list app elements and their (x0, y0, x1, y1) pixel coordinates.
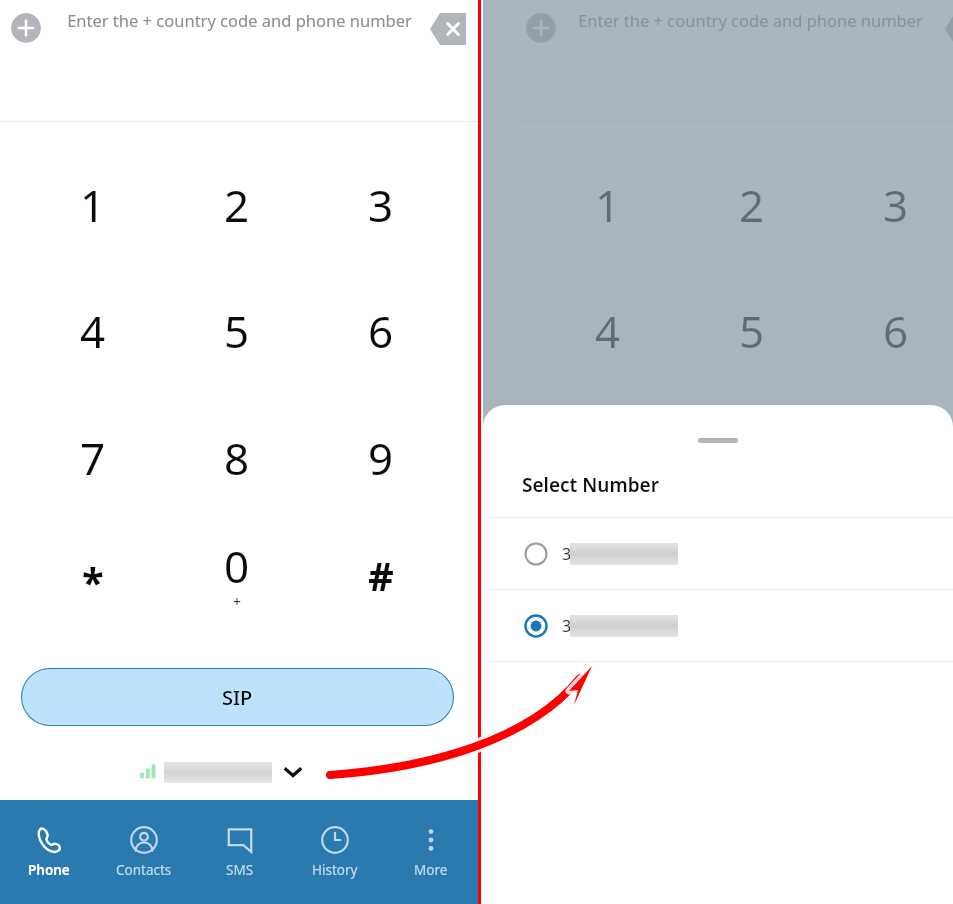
button[interactable]: 1 (35, 161, 151, 249)
staticText: # (368, 548, 394, 602)
staticText: 1 (80, 175, 106, 235)
staticText: 7 (595, 428, 621, 488)
button[interactable]: SIP (21, 668, 454, 726)
staticText: 5 (739, 301, 765, 361)
staticText: 5 (224, 301, 250, 361)
staticText: + (233, 592, 242, 611)
staticText: More (414, 861, 448, 879)
button[interactable]: 8 (179, 414, 295, 502)
button[interactable]: 4 (35, 287, 151, 375)
button[interactable]: 5 (694, 287, 810, 375)
button[interactable]: Backspace (430, 13, 466, 45)
button[interactable]: # (323, 531, 439, 619)
button[interactable]: SMS (192, 800, 287, 904)
staticText: * (597, 554, 619, 608)
button[interactable]: More (383, 800, 478, 904)
staticText: 3 (368, 175, 394, 235)
staticText: 1 (595, 175, 621, 235)
staticText: 3 (562, 543, 572, 565)
staticText: 6 (368, 301, 394, 361)
button[interactable]: History (287, 800, 382, 904)
button[interactable]: 5 (179, 287, 295, 375)
staticText: History (312, 861, 358, 879)
button[interactable]: 2 (179, 161, 295, 249)
button[interactable]: * (35, 531, 151, 619)
staticText: 2 (739, 175, 765, 235)
staticText: 2 (224, 175, 250, 235)
button[interactable]: Add contact (526, 13, 556, 43)
staticText: 3 (883, 175, 909, 235)
staticText: 4 (595, 301, 621, 361)
button[interactable]: Backspace (945, 13, 953, 45)
button[interactable]: 3 (323, 161, 439, 249)
button[interactable]: 3 (838, 161, 953, 249)
button[interactable]: Contacts (96, 800, 191, 904)
staticText: SIP (222, 684, 253, 711)
staticText: Phone (28, 861, 70, 879)
button[interactable]: 9 (323, 414, 439, 502)
staticText: Enter the + country code and phone numbe… (578, 9, 923, 31)
button[interactable]: 9 (838, 414, 953, 502)
staticText: SMS (226, 861, 254, 879)
button[interactable]: 7 (35, 414, 151, 502)
button[interactable]: * (550, 531, 666, 619)
button[interactable]: Phone (1, 800, 96, 904)
staticText: 9 (368, 428, 394, 488)
button[interactable]: 2 (694, 161, 810, 249)
button[interactable]: 6 (323, 287, 439, 375)
button[interactable]: 6 (838, 287, 953, 375)
button[interactable]: 0 (179, 531, 295, 619)
staticText: 3 (562, 615, 572, 637)
staticText: 0 (224, 536, 250, 596)
staticText: Enter the + country code and phone numbe… (67, 9, 412, 31)
button[interactable]: 3 (483, 518, 953, 589)
staticText: 4 (80, 301, 106, 361)
staticText: Select Number (522, 472, 659, 498)
staticText: 7 (80, 428, 106, 488)
button[interactable]: 4 (550, 287, 666, 375)
staticText: 6 (883, 301, 909, 361)
staticText: 8 (224, 428, 250, 488)
button[interactable]: 3 (483, 590, 953, 661)
button[interactable] (140, 752, 340, 792)
button[interactable]: 8 (694, 414, 810, 502)
staticText: Contacts (116, 861, 172, 879)
button[interactable]: 7 (550, 414, 666, 502)
button[interactable]: Add contact (11, 13, 41, 43)
staticText: * (82, 554, 104, 608)
button[interactable]: 1 (550, 161, 666, 249)
